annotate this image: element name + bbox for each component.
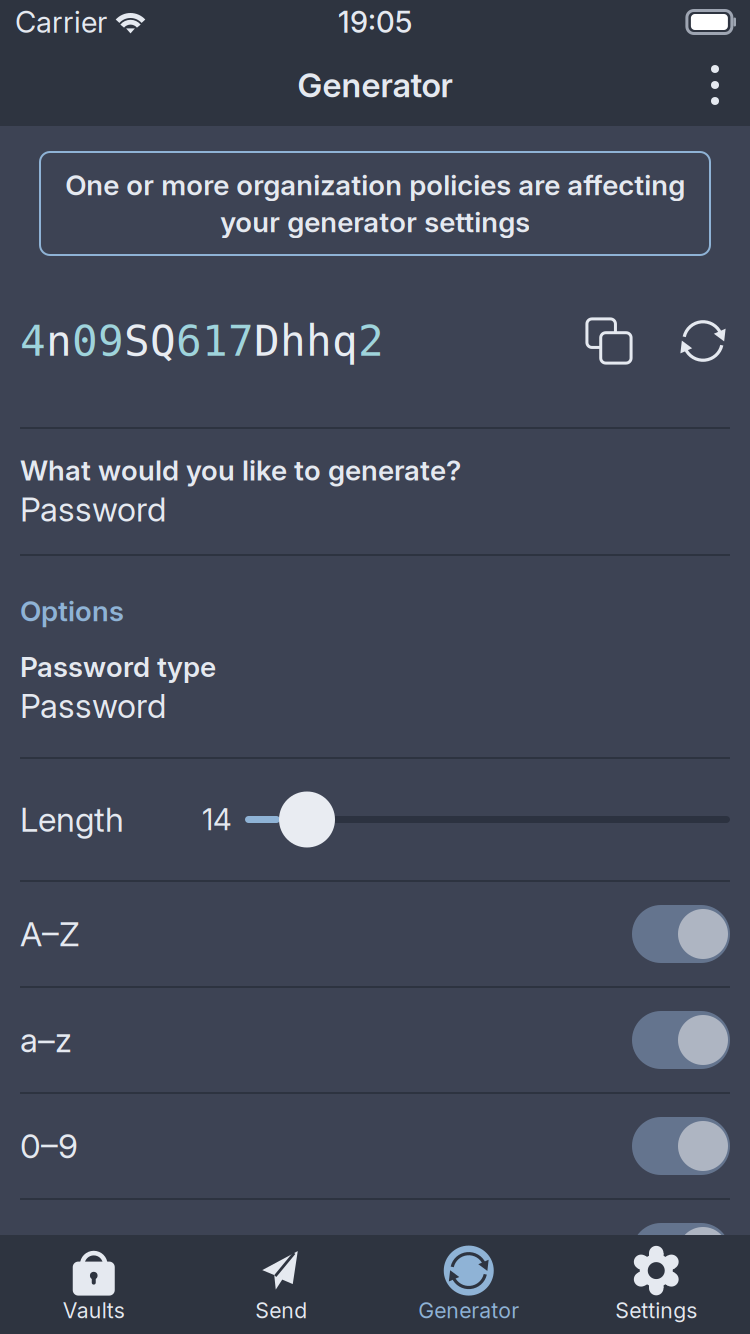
staticText: Length xyxy=(20,799,124,840)
staticText: Vaults xyxy=(63,1298,125,1323)
button[interactable]: a–z xyxy=(0,988,750,1092)
staticText: 0 xyxy=(72,316,98,366)
button[interactable]: Generator xyxy=(375,1235,562,1334)
staticText: What would you like to generate? xyxy=(20,453,461,487)
staticText: 14 xyxy=(202,802,232,837)
staticText: 7 xyxy=(228,316,254,366)
staticText: Password xyxy=(20,489,166,530)
staticText: h xyxy=(306,316,332,366)
staticText: q xyxy=(332,316,358,366)
staticText: One or more organization policies are af… xyxy=(65,168,685,239)
button[interactable]: More options xyxy=(698,61,732,109)
staticText: Settings xyxy=(615,1298,697,1323)
staticText: 9 xyxy=(98,316,124,366)
staticText: Password type xyxy=(20,650,216,684)
button[interactable]: Send xyxy=(187,1235,375,1334)
staticText: h xyxy=(280,316,306,366)
button[interactable]: Vaults xyxy=(0,1235,187,1334)
staticText: Generator xyxy=(418,1298,519,1323)
staticText: n xyxy=(46,316,72,366)
staticText: 4 xyxy=(20,316,46,366)
staticText: Password xyxy=(20,686,166,726)
staticText: Send xyxy=(255,1298,307,1323)
button[interactable]: !@#$%^&* xyxy=(0,1200,750,1304)
button[interactable]: Settings xyxy=(562,1235,750,1334)
staticText: 2 xyxy=(358,316,384,366)
staticText: 0–9 xyxy=(20,1126,78,1166)
button[interactable]: 0–9 xyxy=(0,1094,750,1198)
staticText: Options xyxy=(20,594,124,628)
staticText: D xyxy=(254,316,280,366)
staticText: 1 xyxy=(202,316,228,366)
staticText: !@#$%^&* xyxy=(20,1232,187,1272)
button[interactable]: Copy xyxy=(586,318,632,364)
button[interactable]: Regenerate xyxy=(678,316,728,366)
staticText: A–Z xyxy=(20,914,80,954)
staticText: S xyxy=(124,316,150,366)
staticText: 6 xyxy=(176,316,202,366)
staticText: 19:05 xyxy=(338,4,412,40)
staticText: a–z xyxy=(20,1020,72,1060)
staticText: Generator xyxy=(297,65,452,105)
staticText: Q xyxy=(150,316,176,366)
staticText: Carrier xyxy=(15,4,107,40)
button[interactable]: A–Z xyxy=(0,882,750,986)
